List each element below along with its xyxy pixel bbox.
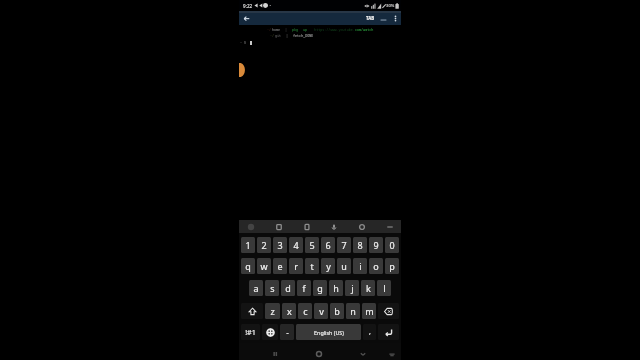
button[interactable]: Shift	[241, 303, 263, 319]
button[interactable]: Microphone	[328, 221, 339, 232]
button[interactable]: TAB	[366, 15, 375, 21]
staticText: pkg	[292, 27, 299, 32]
staticText: g	[317, 282, 323, 294]
button[interactable]: Voice input	[245, 221, 256, 232]
staticText: h	[333, 282, 339, 294]
button[interactable]: Back	[357, 348, 369, 360]
staticText: English (US)	[314, 329, 344, 336]
staticText: |	[282, 33, 293, 38]
button[interactable]: 2	[257, 237, 271, 253]
button[interactable]: Drag handle	[239, 63, 246, 77]
button[interactable]: 5	[305, 237, 319, 253]
button[interactable]: l	[377, 280, 391, 296]
button[interactable]: e	[273, 258, 287, 274]
button[interactable]: y	[321, 258, 335, 274]
button[interactable]: English (US)	[296, 324, 361, 340]
staticText: |	[281, 27, 292, 32]
button[interactable]: r	[289, 258, 303, 274]
button[interactable]: 0	[385, 237, 399, 253]
staticText: ~ $	[240, 40, 249, 45]
button[interactable]: Backspace	[378, 303, 399, 319]
staticText: 8	[357, 239, 363, 251]
staticText: x	[287, 305, 292, 317]
button[interactable]: z	[265, 303, 280, 319]
staticText: fetch_DONE	[293, 33, 314, 38]
button[interactable]: Home	[313, 348, 325, 360]
button[interactable]: i	[353, 258, 367, 274]
staticText: f	[302, 282, 306, 294]
staticText: b	[334, 305, 340, 317]
button[interactable]: Emoji	[301, 221, 312, 232]
button[interactable]: v	[314, 303, 328, 319]
staticText: l	[383, 282, 386, 294]
button[interactable]: Settings	[356, 221, 367, 232]
button[interactable]: w	[257, 258, 271, 274]
staticText: TAB	[366, 15, 375, 21]
button[interactable]: k	[361, 280, 375, 296]
button[interactable]: 9	[369, 237, 383, 253]
button[interactable]: Recents	[269, 348, 281, 360]
button[interactable]: 8	[353, 237, 367, 253]
button[interactable]: 4	[289, 237, 303, 253]
button[interactable]: s	[265, 280, 279, 296]
button[interactable]: u	[337, 258, 351, 274]
button[interactable]: x	[282, 303, 296, 319]
staticText: home	[272, 27, 281, 32]
button[interactable]: o	[369, 258, 383, 274]
staticText: 3	[277, 239, 283, 251]
button[interactable]: Minimize	[375, 11, 389, 25]
button[interactable]: -	[280, 324, 294, 340]
button[interactable]: q	[241, 258, 255, 274]
staticText: p	[389, 260, 395, 272]
staticText: r	[294, 260, 298, 272]
button[interactable]: n	[346, 303, 360, 319]
staticText: 9	[373, 239, 379, 251]
staticText: https://www.youtube.	[308, 27, 355, 32]
staticText: !#1	[245, 327, 256, 337]
button[interactable]: Clipboard	[273, 221, 284, 232]
button[interactable]: m	[362, 303, 376, 319]
button[interactable]: More options	[390, 11, 400, 25]
staticText: ~/	[270, 33, 275, 38]
button[interactable]: !#1	[241, 324, 260, 340]
button[interactable]: j	[345, 280, 359, 296]
staticText: com/watch	[355, 27, 374, 32]
staticText: w	[260, 260, 268, 272]
staticText: s	[270, 282, 275, 294]
button[interactable]: f	[297, 280, 311, 296]
staticText: 6	[325, 239, 331, 251]
staticText: u	[341, 260, 347, 272]
button[interactable]: 6	[321, 237, 335, 253]
button[interactable]: Hide keyboard	[386, 348, 398, 360]
staticText: ,	[369, 327, 371, 337]
button[interactable]: h	[329, 280, 343, 296]
staticText: v	[319, 305, 324, 317]
button[interactable]: c	[298, 303, 312, 319]
button[interactable]: p	[385, 258, 399, 274]
button[interactable]: 7	[337, 237, 351, 253]
staticText: z	[270, 305, 275, 317]
staticText: t	[310, 260, 314, 272]
button[interactable]: t	[305, 258, 319, 274]
staticText: q	[245, 260, 251, 272]
button[interactable]: Change language	[262, 324, 278, 340]
button[interactable]: Back	[239, 11, 253, 25]
button[interactable]: Enter	[378, 324, 399, 340]
staticText: m	[365, 305, 374, 317]
button[interactable]: ,	[363, 324, 376, 340]
button[interactable]: Collapse	[384, 221, 395, 232]
button[interactable]: 3	[273, 237, 287, 253]
staticText: 9:22	[243, 3, 253, 9]
staticText: k	[366, 282, 371, 294]
staticText: 30%	[386, 3, 395, 9]
staticText: 1	[245, 239, 251, 251]
button[interactable]: a	[249, 280, 263, 296]
staticText: ~/	[267, 27, 272, 32]
button[interactable]: 1	[241, 237, 255, 253]
button[interactable]: d	[281, 280, 295, 296]
staticText: 0	[389, 239, 395, 251]
staticText: -	[286, 327, 289, 338]
button[interactable]: g	[313, 280, 327, 296]
staticText: 7	[341, 239, 347, 251]
button[interactable]: b	[330, 303, 344, 319]
